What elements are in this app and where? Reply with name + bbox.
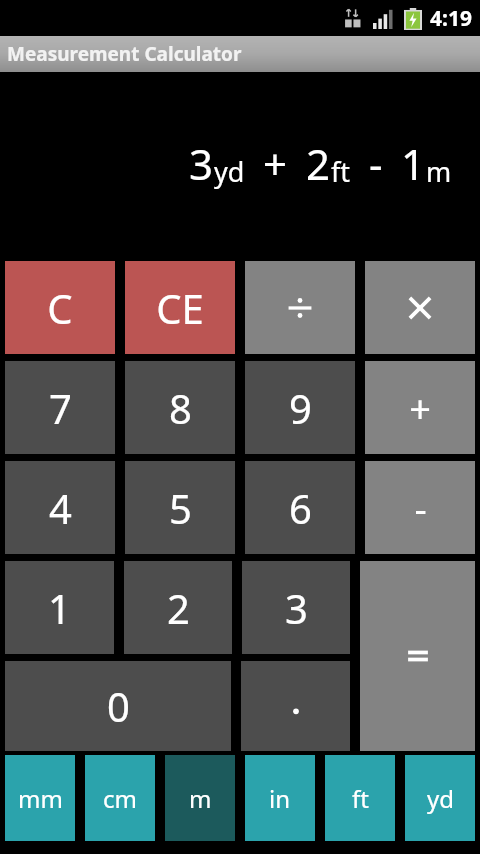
button[interactable]: 7: [5, 361, 115, 454]
staticText: 9: [289, 381, 312, 435]
staticText: 7: [49, 381, 72, 435]
button[interactable]: Multiply: [365, 261, 475, 354]
staticText: m: [426, 153, 452, 190]
button[interactable]: 0: [5, 661, 231, 751]
staticText: -: [369, 135, 383, 192]
staticText: Measurement Calculator: [7, 41, 242, 67]
button[interactable]: m: [165, 755, 235, 841]
button[interactable]: CE: [125, 261, 235, 354]
button[interactable]: 8: [125, 361, 235, 454]
staticText: 2: [306, 135, 331, 192]
staticText: yd: [427, 782, 454, 815]
button[interactable]: yd: [405, 755, 475, 841]
button[interactable]: Decimal point: [241, 661, 350, 751]
staticText: 4:19: [430, 4, 472, 33]
staticText: ft: [352, 782, 369, 815]
button[interactable]: 4: [5, 461, 115, 554]
button[interactable]: 9: [245, 361, 355, 454]
button[interactable]: 5: [125, 461, 235, 554]
button[interactable]: ft: [325, 755, 395, 841]
staticText: +: [263, 135, 288, 192]
button[interactable]: 1: [5, 561, 114, 654]
staticText: CE: [156, 281, 204, 335]
button[interactable]: 2: [124, 561, 232, 654]
staticText: m: [189, 782, 212, 815]
staticText: in: [269, 782, 291, 815]
staticText: 2: [167, 581, 190, 635]
button[interactable]: in: [245, 755, 315, 841]
staticText: 6: [289, 481, 312, 535]
button[interactable]: Equals: [360, 561, 475, 751]
button[interactable]: +: [365, 361, 475, 454]
staticText: +: [409, 382, 431, 434]
staticText: 3: [189, 135, 214, 192]
staticText: 1: [48, 581, 71, 635]
staticText: 5: [169, 481, 192, 535]
staticText: cm: [103, 782, 137, 815]
staticText: mm: [18, 782, 63, 815]
staticText: 1: [401, 135, 426, 192]
staticText: C: [47, 281, 73, 335]
button[interactable]: Divide: [245, 261, 355, 354]
staticText: ft: [331, 153, 351, 190]
staticText: 4: [49, 481, 72, 535]
staticText: 8: [169, 381, 192, 435]
button[interactable]: cm: [85, 755, 155, 841]
staticText: 3: [285, 581, 308, 635]
button[interactable]: C: [5, 261, 115, 354]
button[interactable]: -: [365, 461, 475, 554]
staticText: yd: [214, 153, 245, 190]
button[interactable]: 3: [242, 561, 350, 654]
staticText: -: [414, 482, 427, 534]
staticText: 0: [107, 679, 130, 733]
button[interactable]: mm: [5, 755, 75, 841]
button[interactable]: 6: [245, 461, 355, 554]
